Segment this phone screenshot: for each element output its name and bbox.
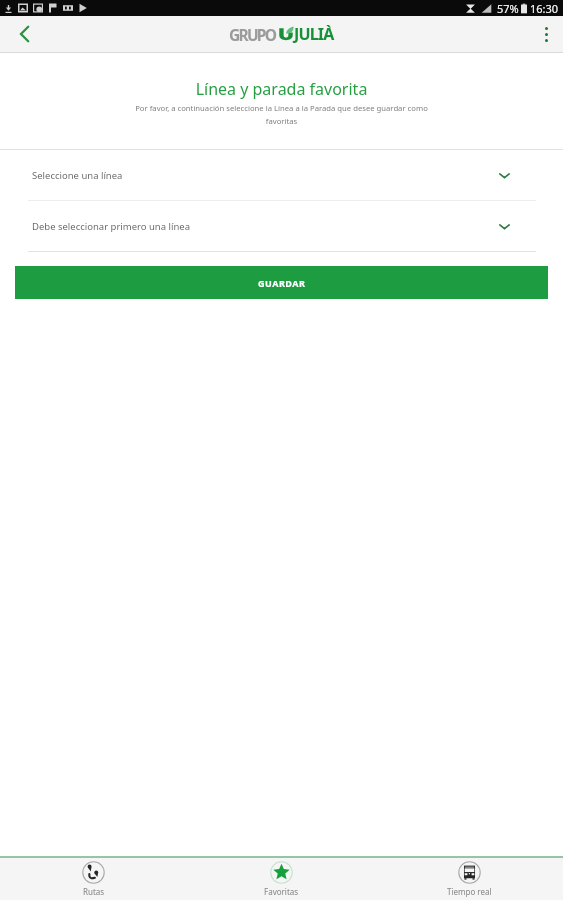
staticText: JULIÀ bbox=[294, 23, 334, 45]
button[interactable]: Rutas bbox=[0, 858, 187, 900]
button[interactable]: More options bbox=[529, 16, 563, 52]
button[interactable]: GUARDAR bbox=[15, 266, 548, 299]
staticText: Tiempo real bbox=[447, 886, 492, 897]
button[interactable]: Tiempo real bbox=[375, 858, 563, 900]
staticText: Por favor, a continuación seleccione la … bbox=[129, 103, 434, 126]
staticText: Favoritas bbox=[264, 886, 299, 897]
button[interactable]: Seleccione una línea bbox=[0, 150, 563, 201]
staticText: Seleccione una línea bbox=[32, 169, 123, 182]
staticText: 16:30 bbox=[530, 1, 559, 16]
staticText: GRUPO bbox=[229, 24, 276, 45]
staticText: GUARDAR bbox=[258, 277, 306, 289]
staticText: Línea y parada favorita bbox=[0, 78, 563, 100]
staticText: 57% bbox=[497, 1, 519, 16]
button[interactable]: Favoritas bbox=[187, 858, 375, 900]
button[interactable]: Debe seleccionar primero una línea bbox=[0, 201, 563, 252]
staticText: Debe seleccionar primero una línea bbox=[32, 220, 191, 233]
staticText: Rutas bbox=[83, 886, 105, 897]
button[interactable]: Back bbox=[0, 16, 48, 52]
